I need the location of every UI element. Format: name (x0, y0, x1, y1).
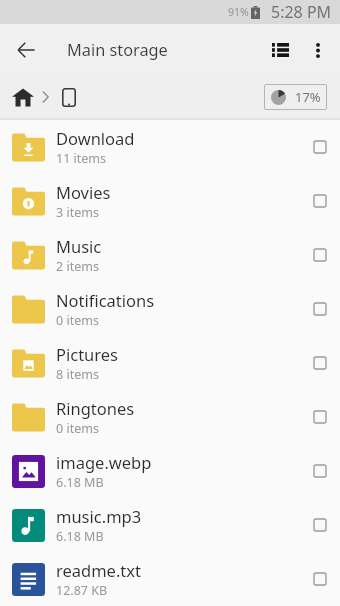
staticText: 6.18 MB (56, 528, 104, 545)
button[interactable]: Select Download (300, 127, 340, 167)
staticText: Music (56, 235, 102, 257)
button[interactable]: Select music.mp3 (300, 505, 340, 545)
staticText: 3 items (56, 204, 99, 221)
staticText: 11 items (56, 150, 107, 167)
button[interactable]: Select Pictures (300, 343, 340, 383)
button[interactable]: Pictures (0, 336, 340, 390)
button[interactable]: Select readme.txt (300, 559, 340, 599)
button[interactable]: Select image.webp (300, 451, 340, 491)
button[interactable]: View mode (261, 31, 299, 69)
button[interactable]: More options (299, 31, 337, 69)
button[interactable]: 17% (264, 84, 327, 110)
button[interactable]: Home (11, 85, 35, 109)
button[interactable]: Select Ringtones (300, 397, 340, 437)
staticText: image.webp (56, 451, 152, 473)
staticText: 12.87 KB (56, 582, 108, 599)
staticText: readme.txt (56, 559, 141, 581)
button[interactable]: Music (0, 228, 340, 282)
staticText: 0 items (56, 420, 99, 437)
button[interactable]: Select Notifications (300, 289, 340, 329)
button[interactable]: Notifications (0, 282, 340, 336)
staticText: Main storage (67, 39, 168, 61)
staticText: Download (56, 127, 135, 149)
staticText: 8 items (56, 366, 99, 383)
staticText: 6.18 MB (56, 474, 104, 491)
button[interactable]: Download (0, 120, 340, 174)
button[interactable]: Device storage (58, 86, 80, 108)
staticText: 17% (295, 88, 321, 106)
staticText: Pictures (56, 343, 119, 365)
staticText: 0 items (56, 312, 99, 329)
staticText: Notifications (56, 289, 155, 311)
staticText: 91% (228, 5, 249, 19)
staticText: 5:28 PM (271, 1, 332, 23)
button[interactable]: image.webp (0, 444, 340, 498)
staticText: music.mp3 (56, 505, 142, 527)
button[interactable]: Select Movies (300, 181, 340, 221)
button[interactable]: music.mp3 (0, 498, 340, 552)
button[interactable]: Back (4, 28, 48, 72)
button[interactable]: Select Music (300, 235, 340, 275)
button[interactable]: Movies (0, 174, 340, 228)
staticText: Movies (56, 181, 111, 203)
staticText: 2 items (56, 258, 99, 275)
staticText: Ringtones (56, 397, 135, 419)
button[interactable]: readme.txt (0, 552, 340, 606)
button[interactable]: Ringtones (0, 390, 340, 444)
